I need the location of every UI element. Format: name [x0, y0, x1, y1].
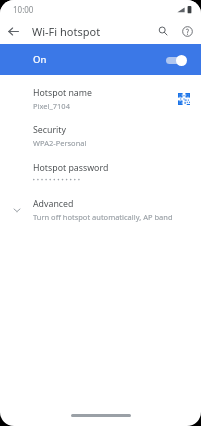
button[interactable]: Security: [0, 117, 201, 154]
staticText: Turn off hotspot automatically, AP band: [33, 212, 173, 222]
other: Expand advanced: [0, 191, 33, 228]
staticText: Security: [33, 124, 67, 136]
button[interactable]: Hotspot name: [0, 80, 201, 117]
button[interactable]: Back: [0, 18, 26, 44]
staticText: Hotspot password: [33, 162, 109, 174]
staticText: 10:00: [13, 4, 34, 15]
button[interactable]: Help: [175, 19, 199, 43]
staticText: On: [33, 53, 47, 66]
staticText: Hotspot name: [33, 87, 92, 99]
button[interactable]: Hotspot password: [0, 154, 201, 191]
staticText: WPA2-Personal: [33, 138, 87, 148]
button[interactable]: Search: [151, 19, 175, 43]
button[interactable]: Expand advanced: [0, 191, 201, 228]
button[interactable]: On: [0, 44, 201, 75]
staticText: Wi-Fi hotspot: [32, 24, 101, 39]
staticText: Pixel_7104: [33, 101, 70, 111]
staticText: Advanced: [33, 198, 74, 210]
button[interactable]: Share hotspot QR code: [172, 87, 196, 111]
